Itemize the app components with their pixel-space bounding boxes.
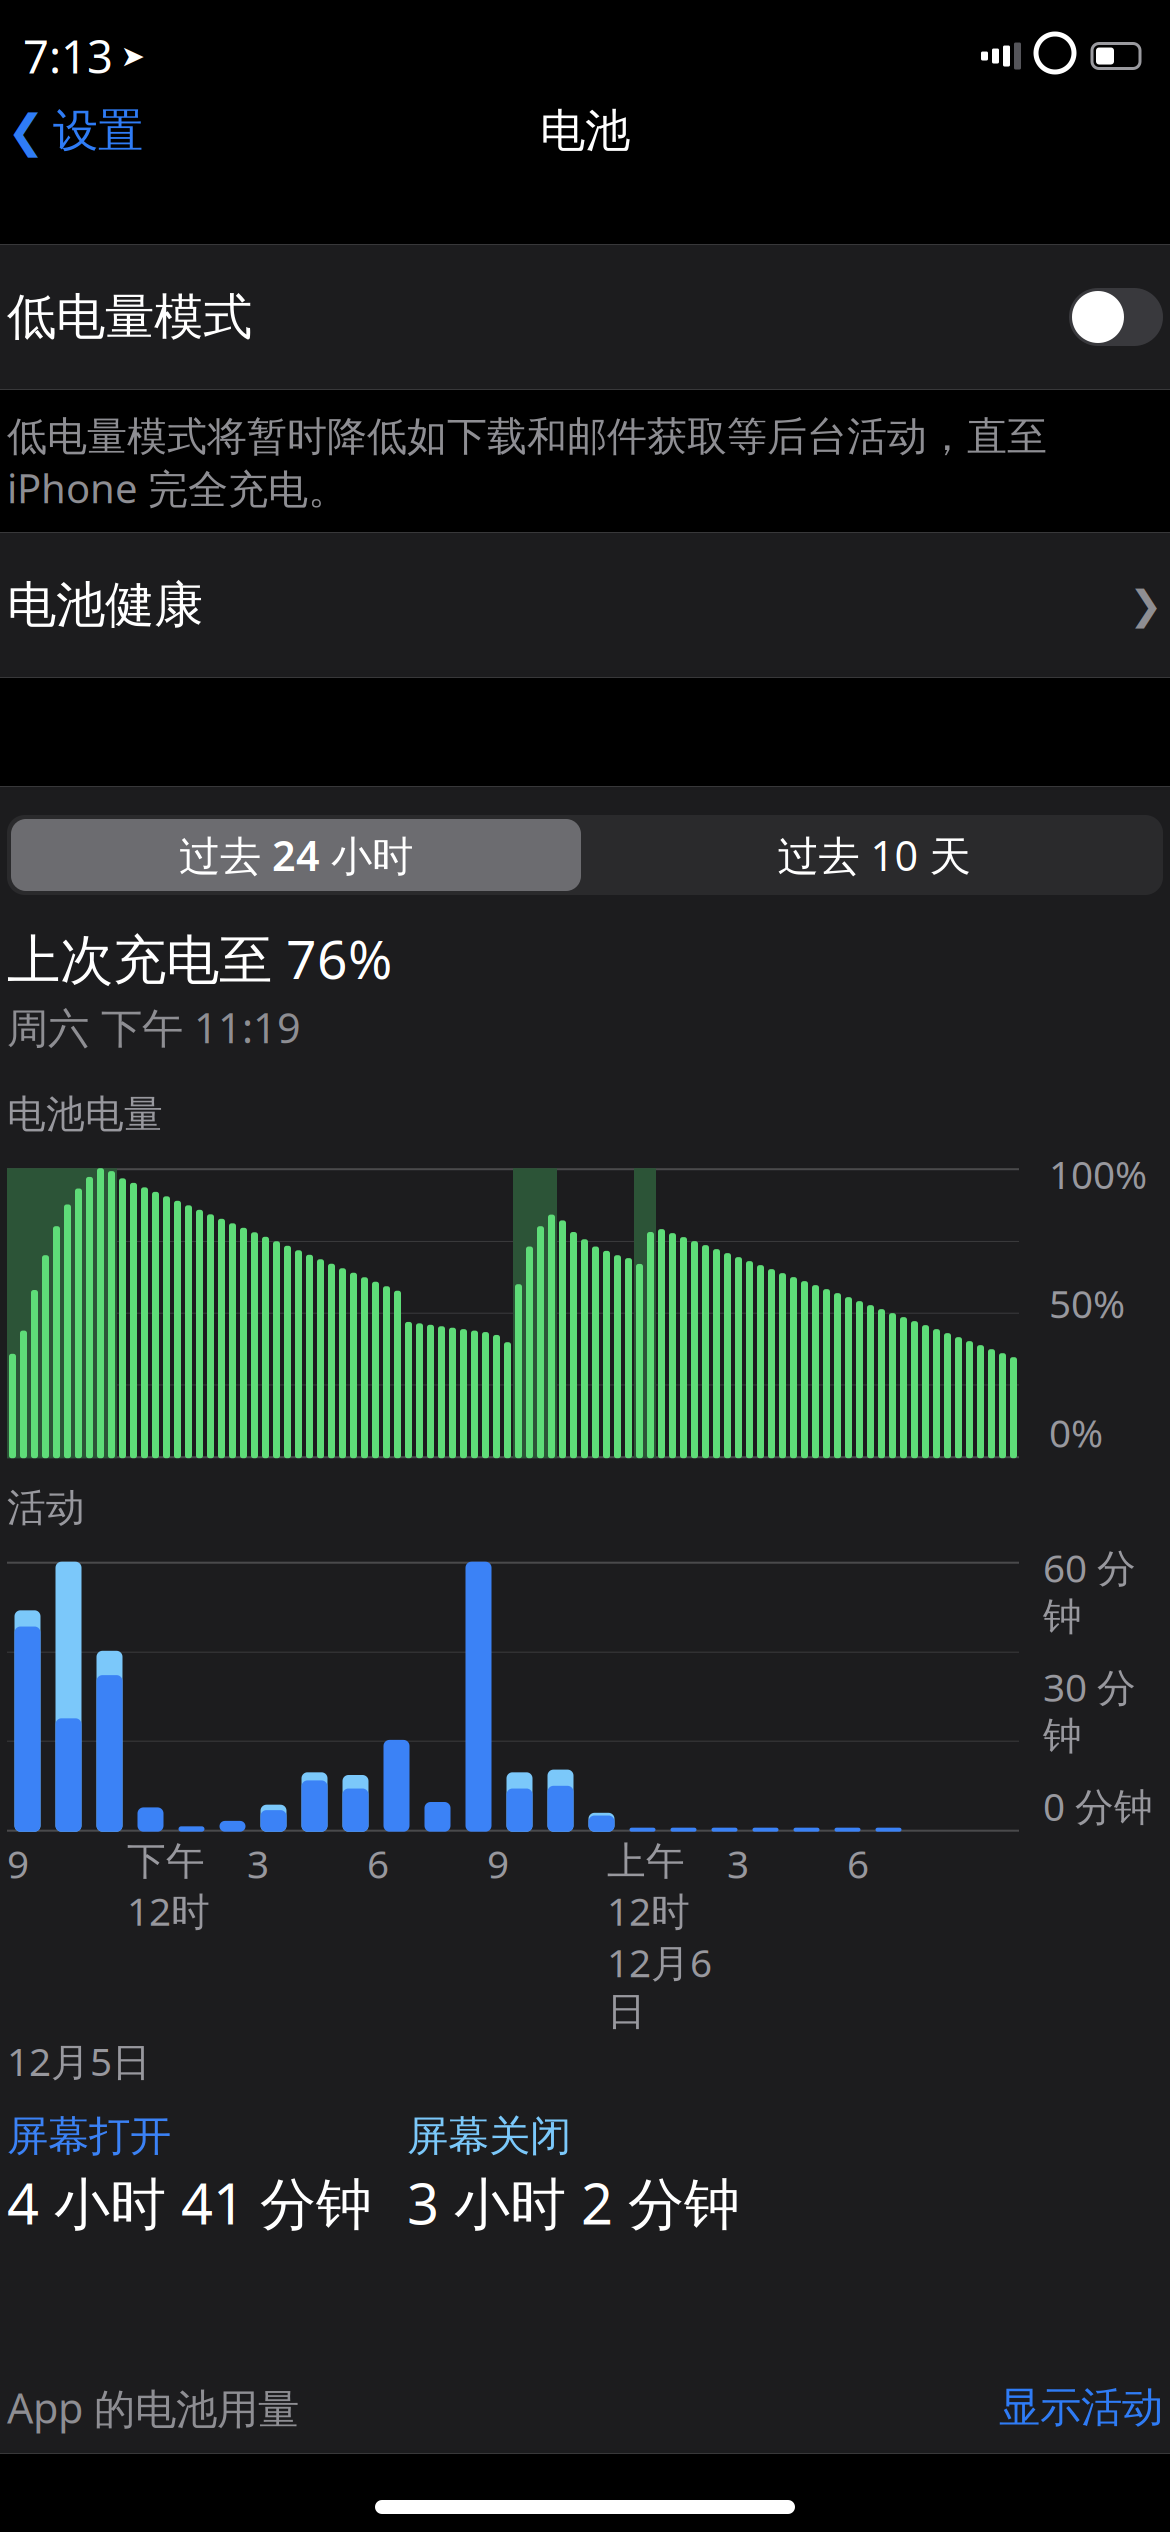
- staticText: 活动: [7, 1484, 85, 1532]
- staticText: 9: [487, 1838, 509, 1889]
- button[interactable]: 显示活动: [999, 2382, 1163, 2433]
- staticText: 周六 下午 11:19: [7, 1000, 301, 1055]
- staticText: 电池健康: [7, 575, 203, 635]
- staticText: 3: [247, 1838, 269, 1889]
- staticText: 过去 10 天: [777, 828, 970, 882]
- button[interactable]: 低电量模式: [0, 245, 1170, 389]
- staticText: 上午 12时 12月6日: [607, 1838, 712, 2035]
- staticText: 电池电量: [7, 1091, 163, 1138]
- staticText: ❯: [1129, 582, 1163, 628]
- staticText: 屏幕关闭: [407, 2111, 571, 2161]
- staticText: 低电量模式将暂时降低如下载和邮件获取等后台活动，直至 iPhone 完全充电。: [7, 412, 1047, 514]
- button[interactable]: 电池健康: [0, 533, 1170, 677]
- staticText: 显示活动: [999, 2382, 1163, 2433]
- staticText: App 的电池用量: [7, 2380, 299, 2435]
- staticText: 6: [847, 1838, 869, 1889]
- staticText: 6: [367, 1838, 389, 1889]
- staticText: 100%: [1049, 1148, 1147, 1199]
- staticText: 屏幕打开: [7, 2111, 171, 2161]
- staticText: 7:13: [23, 26, 113, 86]
- staticText: 电池: [540, 103, 630, 159]
- staticText: 低电量模式: [7, 287, 252, 347]
- staticText: 30 分钟: [1043, 1661, 1136, 1760]
- staticText: 4 小时 41 分钟: [7, 2165, 372, 2240]
- staticText: 上次充电至 76%: [7, 923, 392, 994]
- staticText: 50%: [1049, 1277, 1125, 1329]
- staticText: 0%: [1049, 1407, 1103, 1458]
- staticText: 下午 12时: [127, 1838, 210, 1936]
- button[interactable]: 过去 24 小时: [7, 815, 585, 895]
- staticText: 设置: [53, 103, 143, 159]
- staticText: 过去 24 小时: [179, 828, 413, 882]
- staticText: 3 小时 2 分钟: [407, 2165, 740, 2240]
- staticText: 3: [727, 1838, 749, 1889]
- staticText: 0 分钟: [1043, 1780, 1153, 1832]
- staticText: 60 分钟: [1043, 1542, 1136, 1640]
- button[interactable]: 过去 10 天: [585, 815, 1163, 895]
- staticText: ➤: [120, 39, 145, 73]
- staticText: ❮: [7, 105, 45, 157]
- staticText: 9: [7, 1838, 29, 1889]
- staticText: 12月5日: [7, 2035, 151, 2087]
- button[interactable]: ❮: [1, 93, 149, 169]
